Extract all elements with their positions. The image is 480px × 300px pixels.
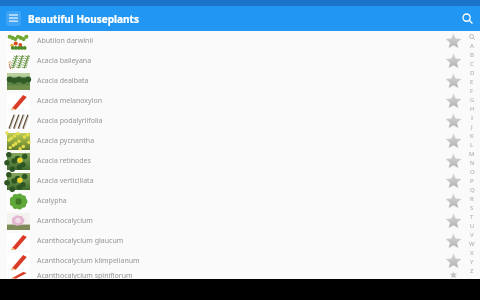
- button[interactable]: Acacia verticillata: [0, 171, 480, 191]
- button[interactable]: Add to favourites: [442, 211, 464, 231]
- button[interactable]: Add to favourites: [442, 91, 464, 111]
- staticText: X: [470, 249, 474, 257]
- button[interactable]: Acacia pycnantha: [0, 131, 480, 151]
- button[interactable]: Acanthocalycium: [0, 211, 480, 231]
- button[interactable]: Y: [464, 257, 480, 266]
- button[interactable]: Acalypha: [0, 191, 480, 211]
- button[interactable]: Add to favourites: [442, 71, 464, 91]
- button[interactable]: Acacia melanoxylon: [0, 91, 480, 111]
- button[interactable]: Add to favourites: [442, 151, 464, 171]
- button[interactable]: W: [464, 239, 480, 248]
- staticText: J: [471, 123, 473, 131]
- staticText: K: [470, 132, 474, 140]
- staticText: Acanthocalycium spiniflorum: [37, 271, 133, 279]
- button[interactable]: R: [464, 194, 480, 203]
- button[interactable]: U: [464, 221, 480, 230]
- button[interactable]: Search: [455, 6, 480, 31]
- button[interactable]: Add to favourites: [442, 231, 464, 251]
- button[interactable]: E: [464, 77, 480, 86]
- button[interactable]: C: [464, 59, 480, 68]
- staticText: T: [470, 213, 474, 221]
- button[interactable]: Acacia baileyana: [0, 51, 480, 71]
- button[interactable]: J: [464, 122, 480, 131]
- button[interactable]: Add to favourites: [442, 111, 464, 131]
- staticText: U: [470, 222, 475, 230]
- button[interactable]: Add to favourites: [442, 171, 464, 191]
- staticText: Acacia pycnantha: [37, 136, 95, 146]
- staticText: Abutilon darwinii: [37, 36, 93, 46]
- button[interactable]: Acanthocalycium spiniflorum: [0, 271, 480, 279]
- button[interactable]: L: [464, 140, 480, 149]
- staticText: N: [470, 159, 475, 167]
- staticText: H: [470, 105, 475, 113]
- staticText: Beautiful Houseplants: [28, 12, 139, 26]
- staticText: Z: [470, 267, 474, 275]
- staticText: I: [471, 114, 474, 122]
- staticText: Acacia verticillata: [37, 176, 94, 186]
- button[interactable]: Acanthocalycium klimpelianum: [0, 251, 480, 271]
- staticText: Acanthocalycium: [37, 216, 93, 226]
- button[interactable]: Acacia retinodes: [0, 151, 480, 171]
- button[interactable]: Add to favourites: [442, 271, 464, 279]
- staticText: A: [470, 42, 474, 50]
- staticText: E: [470, 78, 474, 86]
- button[interactable]: Add to favourites: [442, 131, 464, 151]
- button[interactable]: Acacia podalyriifolia: [0, 111, 480, 131]
- button[interactable]: M: [464, 149, 480, 158]
- button[interactable]: B: [464, 50, 480, 59]
- button[interactable]: X: [464, 248, 480, 257]
- staticText: Acacia retinodes: [37, 156, 91, 166]
- staticText: Acacia melanoxylon: [37, 96, 102, 106]
- button[interactable]: K: [464, 131, 480, 140]
- staticText: Q: [470, 186, 475, 194]
- staticText: Y: [470, 258, 474, 266]
- button[interactable]: T: [464, 212, 480, 221]
- button[interactable]: D: [464, 68, 480, 77]
- staticText: R: [470, 195, 474, 203]
- staticText: O: [470, 168, 475, 176]
- button[interactable]: A: [464, 41, 480, 50]
- staticText: C: [470, 60, 474, 68]
- button[interactable]: Acanthocalycium glaucum: [0, 231, 480, 251]
- button[interactable]: Open navigation menu: [6, 11, 21, 26]
- staticText: B: [470, 51, 474, 59]
- button[interactable]: Add to favourites: [442, 191, 464, 211]
- button[interactable]: Abutilon darwinii: [0, 31, 480, 51]
- staticText: S: [470, 204, 474, 212]
- button[interactable]: Acacia dealbata: [0, 71, 480, 91]
- staticText: P: [470, 177, 474, 185]
- staticText: M: [469, 150, 475, 158]
- staticText: Acacia dealbata: [37, 76, 89, 86]
- staticText: Acanthocalycium glaucum: [37, 236, 124, 246]
- staticText: F: [470, 87, 474, 95]
- button[interactable]: I: [464, 113, 480, 122]
- button[interactable]: P: [464, 176, 480, 185]
- button[interactable]: V: [464, 230, 480, 239]
- button[interactable]: Add to favourites: [442, 251, 464, 271]
- staticText: Acacia podalyriifolia: [37, 116, 103, 126]
- staticText: G: [470, 96, 475, 104]
- button[interactable]: G: [464, 95, 480, 104]
- staticText: Acacia baileyana: [37, 56, 92, 66]
- button[interactable]: Add to favourites: [442, 31, 464, 51]
- button[interactable]: N: [464, 158, 480, 167]
- button[interactable]: Q: [464, 185, 480, 194]
- staticText: L: [470, 141, 474, 149]
- staticText: Acanthocalycium klimpelianum: [37, 256, 140, 266]
- button[interactable]: H: [464, 104, 480, 113]
- staticText: W: [469, 240, 475, 248]
- button[interactable]: Add to favourites: [442, 51, 464, 71]
- button[interactable]: Z: [464, 266, 480, 275]
- button[interactable]: F: [464, 86, 480, 95]
- staticText: V: [470, 231, 474, 239]
- staticText: Acalypha: [37, 196, 67, 206]
- button[interactable]: Search index: [464, 32, 480, 41]
- button[interactable]: O: [464, 167, 480, 176]
- staticText: D: [470, 69, 475, 77]
- button[interactable]: S: [464, 203, 480, 212]
